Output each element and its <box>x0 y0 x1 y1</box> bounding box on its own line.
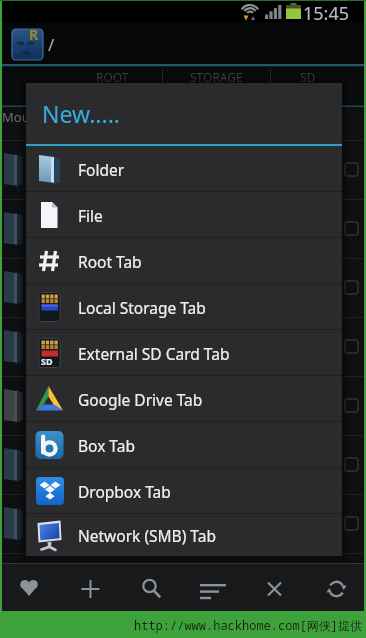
staticText: Folder <box>78 159 125 180</box>
button[interactable]: SD <box>26 330 342 376</box>
staticText: Root Tab <box>78 251 142 272</box>
staticText: Local Storage Tab <box>78 297 206 318</box>
button[interactable]: Local Storage Tab <box>26 284 342 330</box>
staticText: R <box>29 25 39 44</box>
staticText: SD <box>300 69 316 85</box>
staticText: Google Drive Tab <box>78 389 203 410</box>
staticText: Network (SMB) Tab <box>78 525 216 546</box>
button[interactable] <box>191 566 236 608</box>
staticText: New..... <box>42 98 120 129</box>
staticText: Dropbox Tab <box>78 481 171 502</box>
staticText: 15:45 <box>303 1 350 26</box>
staticText: ROOT <box>96 69 129 85</box>
button[interactable]: Root Tab <box>26 238 342 284</box>
button[interactable] <box>69 566 114 608</box>
staticText: External SD Card Tab <box>78 343 230 364</box>
button[interactable]: Network (SMB) Tab <box>26 514 342 556</box>
button[interactable] <box>313 566 358 608</box>
button[interactable]: File <box>26 192 342 238</box>
button[interactable]: Box Tab <box>26 422 342 468</box>
button[interactable]: Folder <box>26 146 342 192</box>
button[interactable] <box>130 566 175 608</box>
button[interactable] <box>8 566 53 608</box>
staticText: STORAGE <box>190 69 243 85</box>
staticText: File <box>78 205 103 226</box>
staticText: http://www.hackhome.com[网侠]提供 <box>134 617 363 633</box>
staticText: Box Tab <box>78 435 135 456</box>
staticText: / <box>48 33 55 56</box>
staticText: Mou <box>2 108 30 126</box>
button[interactable]: Dropbox Tab <box>26 468 342 514</box>
staticText: SD <box>41 355 53 367</box>
button[interactable]: Google Drive Tab <box>26 376 342 422</box>
button[interactable] <box>252 566 297 608</box>
